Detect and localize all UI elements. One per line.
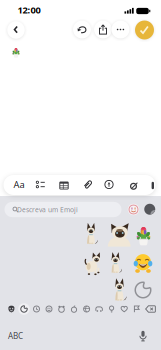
button[interactable]: Smileys and People xyxy=(46,306,52,312)
button[interactable]: Cat emoji xyxy=(107,223,131,247)
button[interactable]: Markup xyxy=(104,180,113,189)
button[interactable]: Smart Script xyxy=(129,181,138,190)
button[interactable]: Dictation xyxy=(138,330,148,342)
button[interactable]: Back xyxy=(7,21,25,39)
button[interactable]: Frequently Used xyxy=(33,306,40,312)
button[interactable]: Symbols xyxy=(121,306,128,312)
button[interactable]: Describe an Emoji xyxy=(4,202,121,217)
button[interactable]: Cat emoji xyxy=(108,252,123,273)
button[interactable]: Travel and Places xyxy=(95,306,103,312)
button[interactable]: Genmoji xyxy=(8,305,15,313)
button[interactable]: Genmoji xyxy=(128,204,139,215)
button[interactable]: Cat emoji xyxy=(84,223,98,244)
button[interactable]: Animals and Nature xyxy=(58,306,65,312)
button[interactable]: Cactus emoji xyxy=(134,223,153,246)
button[interactable]: Cat emoji xyxy=(84,252,102,275)
button[interactable]: Share xyxy=(94,20,112,38)
button[interactable]: Objects xyxy=(109,306,114,312)
button[interactable]: Food and Drink xyxy=(71,306,77,312)
button[interactable]: Checklist xyxy=(36,181,45,188)
button[interactable]: Switch to letters keyboard xyxy=(8,331,23,341)
button[interactable]: Flags xyxy=(134,305,140,313)
staticText: Descreva um Emoji xyxy=(17,205,78,214)
button[interactable]: Laughing emoji xyxy=(133,253,153,273)
button[interactable]: Undo xyxy=(73,20,91,38)
staticText: Aa xyxy=(13,178,24,191)
button[interactable]: Activities xyxy=(83,306,90,312)
button[interactable]: Format xyxy=(13,178,24,191)
button[interactable]: Stickers xyxy=(20,305,28,313)
button[interactable]: Attach xyxy=(83,180,92,189)
button[interactable]: Cat emoji xyxy=(112,278,127,301)
button[interactable]: Table xyxy=(59,181,69,189)
staticText: ABC xyxy=(8,331,23,341)
button[interactable]: Stickers xyxy=(144,204,156,215)
staticText: 12:00 xyxy=(17,4,40,16)
button[interactable]: Delete xyxy=(145,305,156,313)
button[interactable]: Done xyxy=(135,20,154,39)
button[interactable]: More xyxy=(111,20,129,38)
